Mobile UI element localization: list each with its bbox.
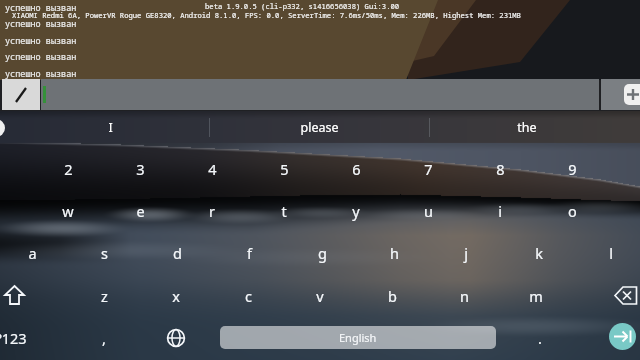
staticText: beta 1.9.0.5 (cli-p332, s1416656038) Gui… xyxy=(205,1,400,11)
staticText: a xyxy=(28,243,37,263)
button[interactable]: . xyxy=(522,317,558,359)
staticText: успешно вызван xyxy=(5,35,77,47)
staticText: j xyxy=(464,243,468,263)
staticText: 3 xyxy=(136,159,145,179)
button[interactable]: v xyxy=(302,275,338,317)
staticText: o xyxy=(568,201,577,221)
staticText: ?123 xyxy=(0,328,27,348)
button[interactable]: I xyxy=(58,112,162,143)
button[interactable]: l xyxy=(593,232,629,274)
staticText: 7 xyxy=(424,159,433,179)
staticText: please xyxy=(300,119,339,136)
button[interactable]: 7 xyxy=(410,148,446,190)
button[interactable]: u xyxy=(410,190,446,232)
staticText: n xyxy=(460,286,469,306)
staticText: m xyxy=(529,286,543,306)
button[interactable]: i xyxy=(482,190,518,232)
staticText: s xyxy=(101,243,108,263)
button[interactable]: b xyxy=(374,275,410,317)
button[interactable]: the xyxy=(475,112,579,143)
button[interactable]: 6 xyxy=(338,148,374,190)
button[interactable]: Shift xyxy=(0,275,32,317)
button[interactable]: Backspace xyxy=(608,275,640,317)
staticText: 1 xyxy=(0,159,1,179)
button[interactable]: f xyxy=(231,232,267,274)
button[interactable]: g xyxy=(304,232,340,274)
button[interactable]: q xyxy=(0,190,14,232)
staticText: x xyxy=(172,286,180,306)
button[interactable]: Slash command xyxy=(2,79,40,110)
staticText: r xyxy=(209,201,215,221)
button[interactable]: s xyxy=(86,232,122,274)
staticText: f xyxy=(247,243,252,263)
button[interactable]: h xyxy=(376,232,412,274)
button[interactable]: English xyxy=(220,326,496,349)
staticText: i xyxy=(498,201,502,221)
button[interactable]: y xyxy=(338,190,374,232)
button[interactable]: 8 xyxy=(482,148,518,190)
button[interactable]: j xyxy=(448,232,484,274)
staticText: c xyxy=(245,286,252,306)
staticText: 9 xyxy=(568,159,577,179)
staticText: успешно вызван xyxy=(5,51,77,63)
button[interactable]: c xyxy=(230,275,266,317)
staticText: XIAOMI Redmi 6A, PowerVR Rogue GE8320, A… xyxy=(12,10,521,20)
button[interactable]: Send message xyxy=(624,84,640,105)
button[interactable] xyxy=(41,79,599,110)
button[interactable]: w xyxy=(50,190,86,232)
button[interactable]: , xyxy=(86,317,122,359)
button[interactable]: n xyxy=(446,275,482,317)
button[interactable]: 2 xyxy=(50,148,86,190)
button[interactable]: m xyxy=(518,275,554,317)
staticText: 4 xyxy=(208,159,217,179)
staticText: e xyxy=(136,201,145,221)
button[interactable]: 0 xyxy=(626,148,640,190)
staticText: g xyxy=(318,243,327,263)
button[interactable]: t xyxy=(266,190,302,232)
staticText: t xyxy=(281,201,287,221)
staticText: , xyxy=(102,328,106,348)
button[interactable]: 5 xyxy=(266,148,302,190)
staticText: успешно вызван xyxy=(5,2,77,14)
button[interactable]: ?123 xyxy=(0,317,29,359)
button[interactable]: k xyxy=(521,232,557,274)
button[interactable]: o xyxy=(554,190,590,232)
staticText: b xyxy=(388,286,397,306)
button[interactable]: 9 xyxy=(554,148,590,190)
staticText: q xyxy=(0,201,1,221)
staticText: w xyxy=(62,201,74,221)
staticText: the xyxy=(517,119,537,136)
staticText: 5 xyxy=(280,159,289,179)
button[interactable]: 4 xyxy=(194,148,230,190)
button[interactable]: 1 xyxy=(0,148,14,190)
staticText: l xyxy=(609,243,613,263)
button[interactable]: 3 xyxy=(122,148,158,190)
staticText: z xyxy=(101,286,108,306)
staticText: English xyxy=(339,330,377,345)
button[interactable]: please xyxy=(267,112,371,143)
button[interactable]: p xyxy=(626,190,640,232)
button[interactable]: Change keyboard language xyxy=(158,319,194,357)
staticText: h xyxy=(390,243,399,263)
button[interactable]: z xyxy=(86,275,122,317)
staticText: u xyxy=(424,201,433,221)
staticText: y xyxy=(352,201,360,221)
staticText: 2 xyxy=(64,159,73,179)
button[interactable]: a xyxy=(14,232,50,274)
staticText: . xyxy=(538,328,542,348)
button[interactable]: e xyxy=(122,190,158,232)
staticText: 8 xyxy=(496,159,505,179)
staticText: I xyxy=(108,119,113,136)
button[interactable]: x xyxy=(158,275,194,317)
button[interactable]: d xyxy=(159,232,195,274)
staticText: k xyxy=(535,243,543,263)
button[interactable]: Enter xyxy=(609,323,636,350)
staticText: v xyxy=(316,286,324,306)
staticText: 6 xyxy=(352,159,361,179)
staticText: успешно вызван xyxy=(5,18,77,30)
button[interactable]: r xyxy=(194,190,230,232)
staticText: успешно вызван xyxy=(5,68,77,80)
staticText: d xyxy=(173,243,182,263)
